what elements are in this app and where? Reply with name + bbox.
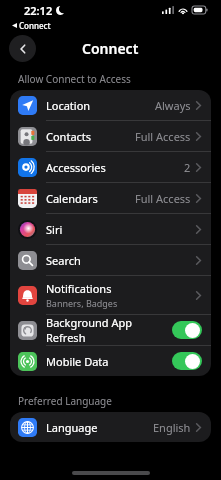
staticText: Mobile Data — [46, 354, 172, 369]
button[interactable]: Calendars — [10, 183, 211, 214]
button[interactable]: Notifications — [10, 276, 211, 315]
staticText: Accessories — [46, 160, 106, 175]
staticText: English — [153, 420, 191, 435]
button[interactable]: Mobile Data — [10, 346, 211, 376]
button[interactable]: Contacts — [10, 121, 211, 152]
button[interactable]: Mobile Data toggle — [172, 352, 202, 370]
staticText: Search — [46, 253, 81, 268]
staticText: Full Access — [135, 129, 191, 144]
button[interactable]: Back to Connect — [12, 20, 221, 31]
button[interactable]: Search — [10, 245, 211, 276]
staticText: Calendars — [46, 191, 98, 206]
button[interactable]: Language — [10, 412, 211, 442]
button[interactable]: Background App Refresh toggle — [172, 321, 202, 339]
staticText: Full Access — [135, 191, 191, 206]
staticText: Siri — [46, 222, 63, 237]
staticText: Connect — [82, 39, 139, 58]
staticText: Connect — [19, 20, 51, 31]
staticText: Allow Connect to Access — [18, 72, 131, 86]
staticText: Location — [46, 98, 91, 113]
staticText: Background App Refresh — [46, 315, 172, 345]
button[interactable]: Location — [10, 90, 211, 121]
staticText: Contacts — [46, 129, 92, 144]
staticText: Notifications — [46, 281, 112, 296]
button[interactable]: Back — [9, 35, 36, 62]
staticText: Banners, Badges — [46, 297, 118, 309]
staticText: 2 — [184, 160, 191, 175]
staticText: Always — [155, 98, 191, 113]
button[interactable]: Background App Refresh — [10, 315, 211, 346]
staticText: 22:12 — [24, 3, 53, 18]
staticText: Preferred Language — [18, 394, 112, 408]
staticText: Language — [46, 420, 98, 435]
button[interactable]: Accessories — [10, 152, 211, 183]
button[interactable]: Siri — [10, 214, 211, 245]
